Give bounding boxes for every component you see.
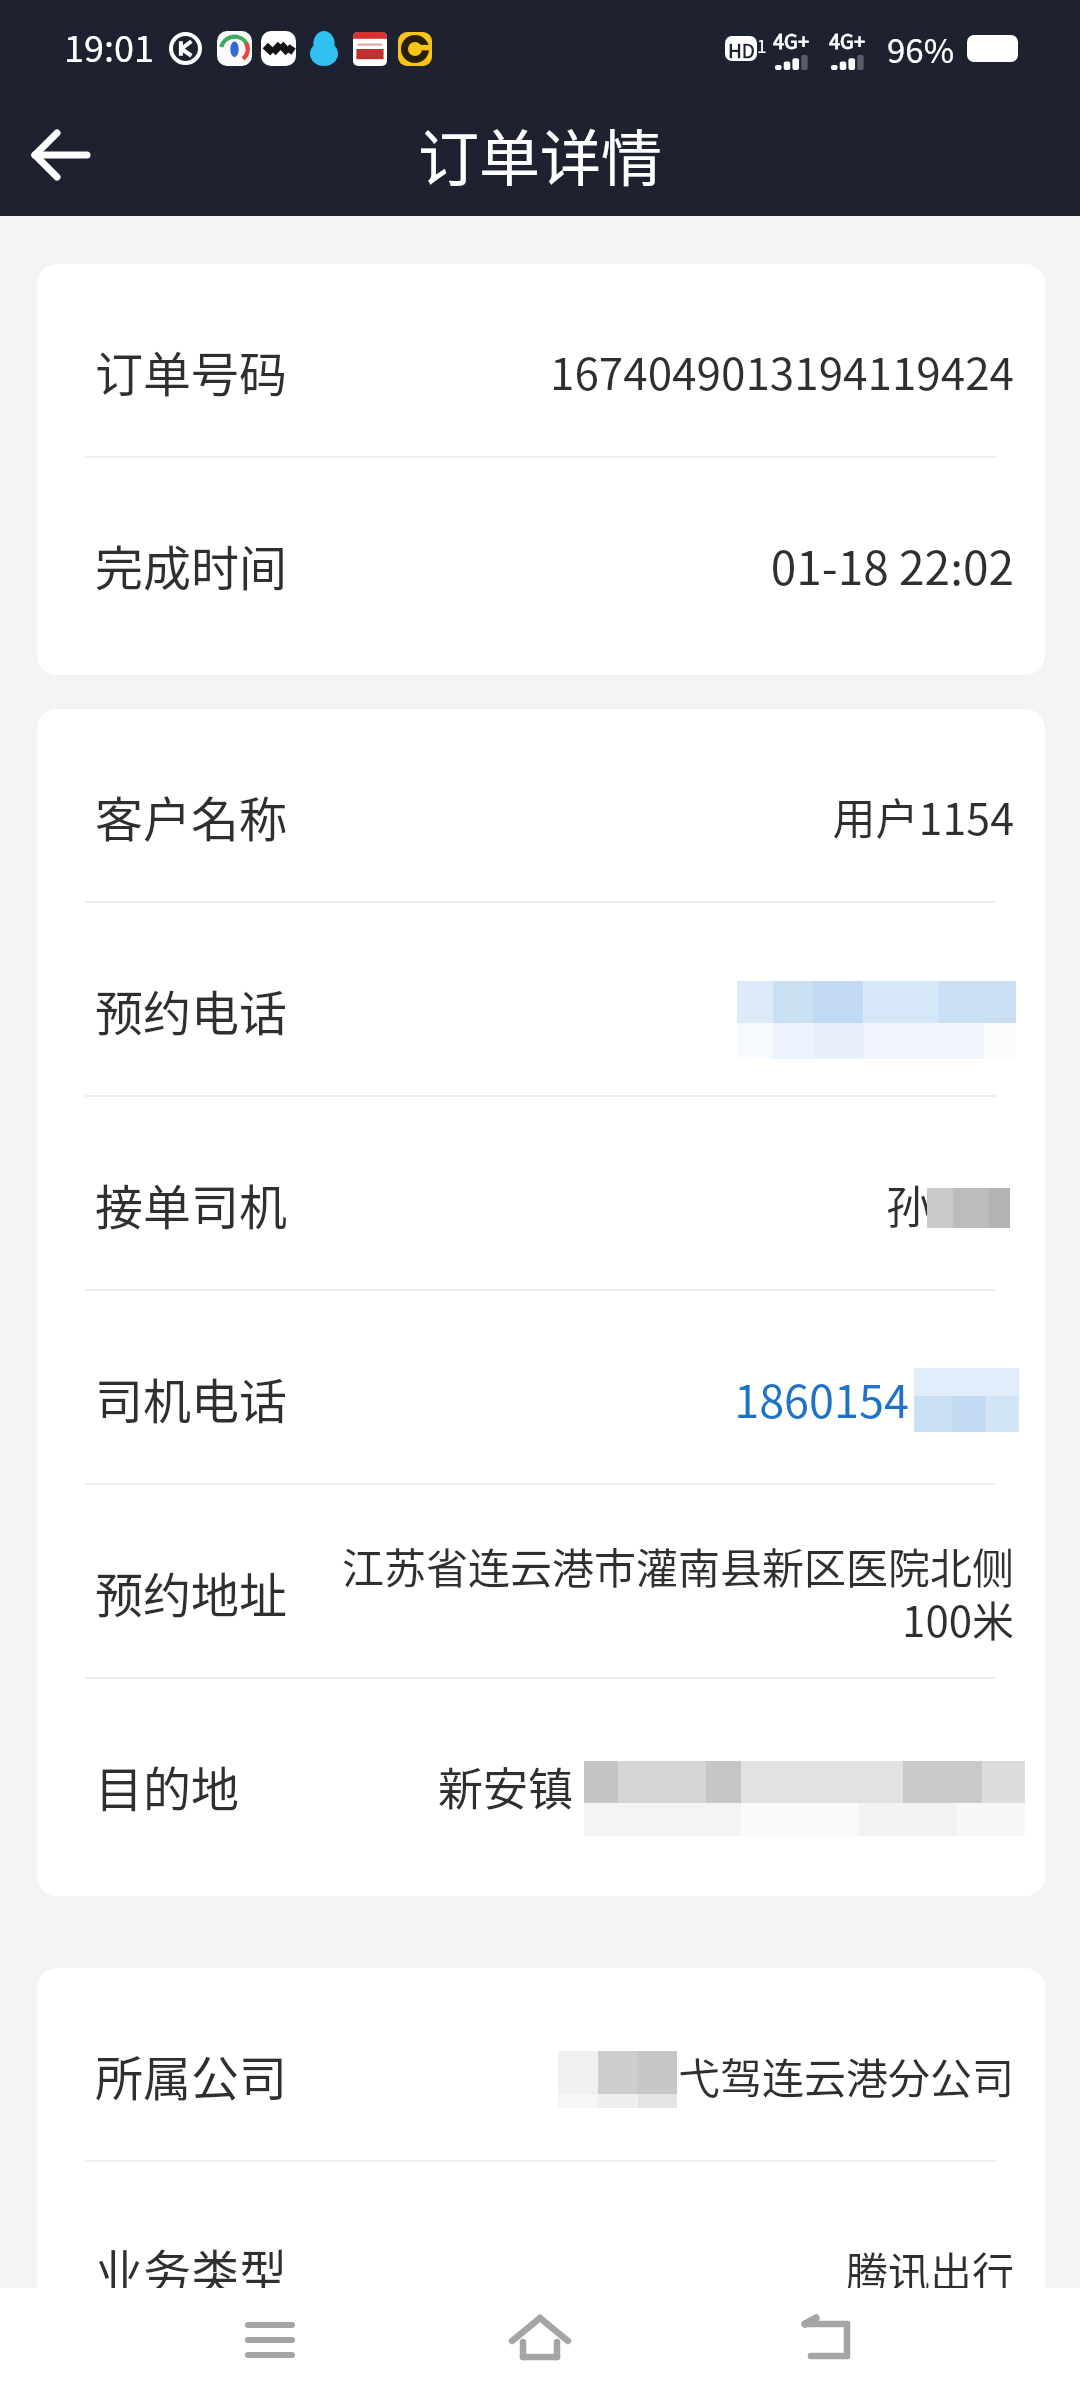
staticText: 19:01 <box>64 20 154 72</box>
button[interactable]: 目的地 <box>37 1679 1045 1871</box>
staticText: 完成时间 <box>95 530 288 600</box>
button[interactable]: 预约地址 <box>37 1485 1045 1677</box>
staticText: 1860154 <box>734 1366 909 1431</box>
staticText: 业务类型 <box>95 2234 288 2304</box>
button[interactable]: Home <box>460 2288 620 2404</box>
staticText: 96% <box>887 25 955 73</box>
staticText: 江苏省连云港市灌南县新区医院北侧100米 <box>308 1535 1014 1649</box>
staticText: 客户名称 <box>95 781 288 851</box>
button[interactable]: 客户名称 <box>37 709 1045 901</box>
button[interactable]: 司机电话 <box>37 1291 1045 1483</box>
button[interactable]: 完成时间 <box>37 458 1045 650</box>
staticText: 司机电话 <box>95 1363 288 1433</box>
button[interactable]: 业务类型 <box>37 2162 1045 2354</box>
staticText: 接单司机 <box>95 1169 288 1239</box>
staticText: 新安镇 <box>437 1754 573 1819</box>
staticText: 所属公司 <box>95 2040 288 2110</box>
button[interactable]: Back <box>9 104 113 208</box>
button[interactable]: Go back <box>743 2288 903 2404</box>
staticText: 1 <box>757 33 767 58</box>
staticText: 腾讯出行 <box>308 2239 1014 2300</box>
staticText: 订单详情 <box>418 110 663 198</box>
staticText: 1674049013194119424 <box>308 339 1014 403</box>
staticText: 预约地址 <box>95 1557 288 1627</box>
staticText: 孙 <box>885 1172 931 1237</box>
staticText: 订单号码 <box>95 336 288 406</box>
staticText: 预约电话 <box>95 975 288 1045</box>
button[interactable]: 预约电话 <box>37 903 1045 1095</box>
button[interactable]: 订单号码 <box>37 264 1045 456</box>
button[interactable]: 接单司机 <box>37 1097 1045 1289</box>
button[interactable]: Recent apps <box>190 2288 350 2404</box>
button[interactable]: 所属公司 <box>37 1968 1045 2160</box>
staticText: 弋驾连云港分公司 <box>677 2045 1014 2106</box>
staticText: 4G+ <box>829 26 865 55</box>
staticText: HD <box>728 36 755 61</box>
staticText: 用户1154 <box>308 785 1014 847</box>
staticText: 4G+ <box>773 26 809 55</box>
staticText: 目的地 <box>95 1751 240 1821</box>
staticText: 01-18 22:02 <box>308 532 1014 599</box>
